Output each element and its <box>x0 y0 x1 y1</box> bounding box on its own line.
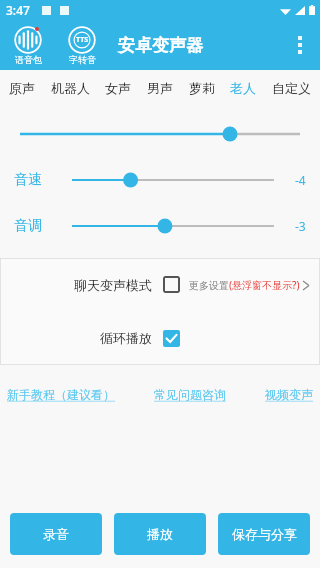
staticText: 保存与分享 <box>232 526 297 542</box>
button[interactable]: 保存与分享 <box>218 513 310 555</box>
staticText: 字转音 <box>69 54 96 65</box>
staticText: 播放 <box>147 526 173 542</box>
staticText: 视频变声 <box>265 387 313 402</box>
button[interactable]: More options <box>280 20 320 70</box>
button[interactable]: 女声 <box>103 80 133 96</box>
button[interactable]: TTS <box>59 26 105 65</box>
staticText: 语音包 <box>15 54 42 65</box>
button[interactable]: 常见问题咨询 <box>154 387 226 402</box>
staticText: 聊天变声模式 <box>74 277 152 293</box>
staticText: 常见问题咨询 <box>154 387 226 402</box>
button[interactable] <box>20 122 300 146</box>
staticText: 原声 <box>9 80 35 96</box>
staticText: 循环播放 <box>100 330 152 346</box>
staticText: -3 <box>295 218 306 234</box>
button[interactable]: 老人 <box>228 80 258 96</box>
button[interactable]: 聊天变声模式 <box>0 258 320 311</box>
button[interactable]: 播放 <box>114 513 206 555</box>
staticText: 老人 <box>230 80 256 96</box>
staticText: -4 <box>295 172 306 188</box>
staticText: 女声 <box>105 80 131 96</box>
staticText: 更多设置 <box>189 279 229 292</box>
button[interactable]: Checkbox <box>163 330 180 347</box>
button[interactable]: 原声 <box>7 80 37 96</box>
staticText: 录音 <box>43 526 69 542</box>
button[interactable]: 循环播放 <box>0 311 320 365</box>
staticText: 安卓变声器 <box>118 35 203 56</box>
button[interactable]: 音调 <box>14 214 306 238</box>
button[interactable]: 录音 <box>10 513 102 555</box>
button[interactable]: 视频变声 <box>265 387 313 402</box>
button[interactable]: 萝莉 <box>187 80 217 96</box>
staticText: (悬浮窗不显示?) <box>229 278 300 292</box>
staticText: 新手教程（建议看） <box>7 387 115 402</box>
button[interactable]: 语音包 <box>5 26 51 65</box>
staticText: 男声 <box>147 80 173 96</box>
button[interactable]: 音速 <box>14 168 306 192</box>
staticText: 机器人 <box>51 80 90 96</box>
button[interactable]: 男声 <box>145 80 175 96</box>
button[interactable]: Checkbox <box>163 276 180 293</box>
button[interactable]: 新手教程（建议看） <box>7 387 115 402</box>
staticText: 萝莉 <box>189 80 215 96</box>
staticText: 自定义 <box>272 80 311 96</box>
staticText: TTS <box>76 35 89 45</box>
button[interactable]: 自定义 <box>270 80 313 96</box>
button[interactable]: 机器人 <box>49 80 92 96</box>
staticText: 音速 <box>14 171 42 189</box>
staticText: 音调 <box>14 217 42 235</box>
staticText: 3:47 <box>6 2 30 18</box>
